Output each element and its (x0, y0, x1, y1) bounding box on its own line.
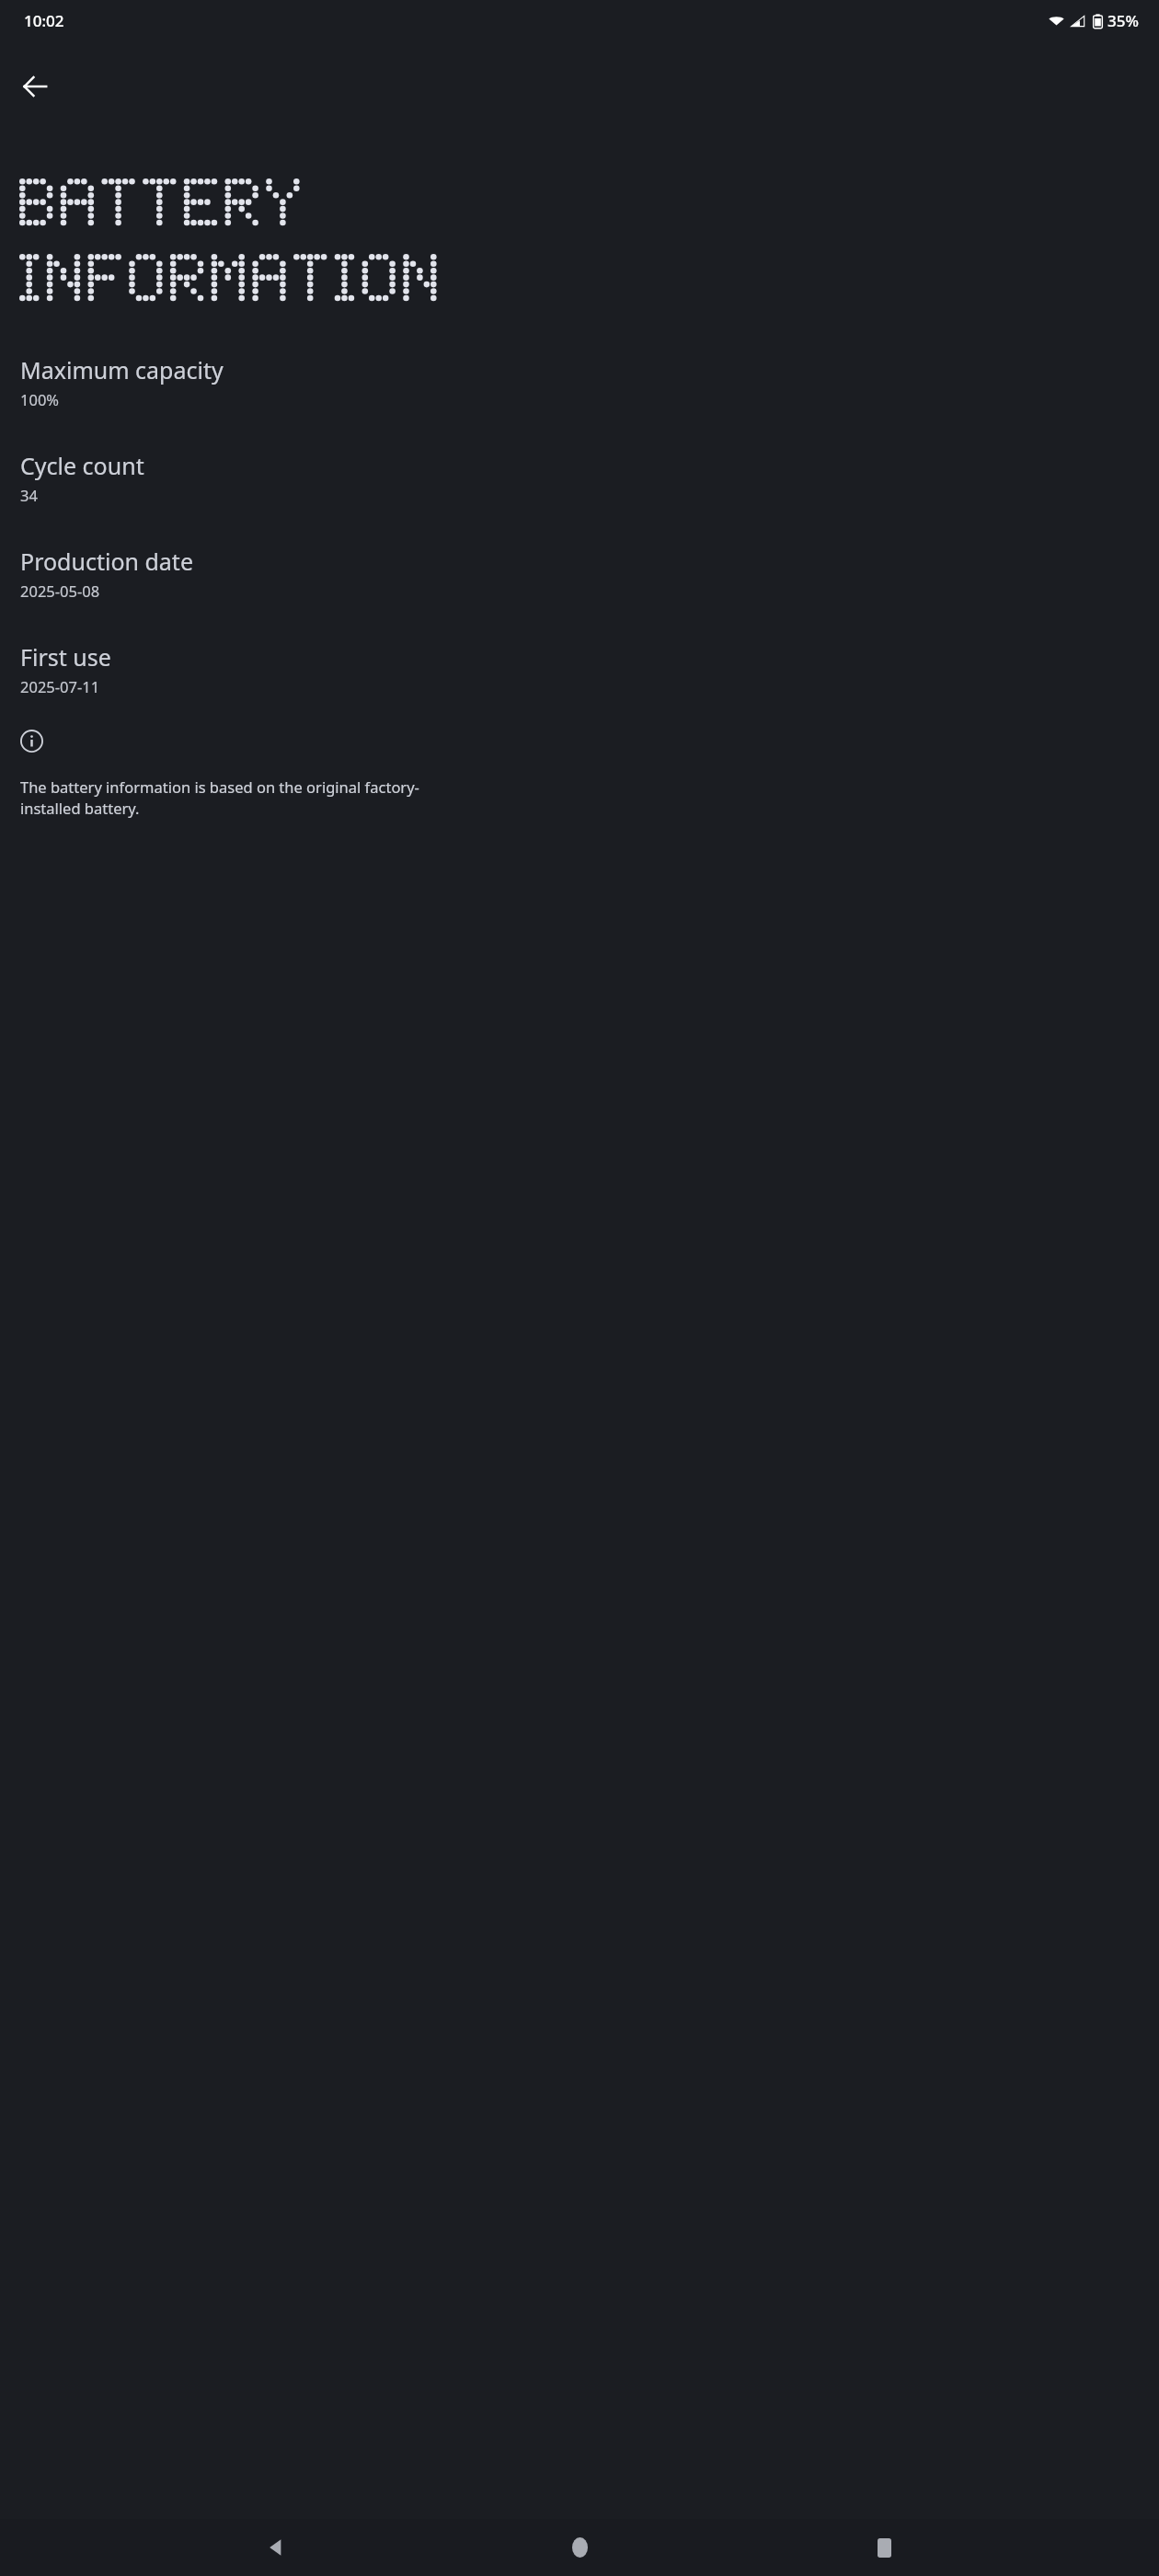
staticText: Production date (20, 546, 193, 577)
button[interactable]: Home (551, 2519, 608, 2576)
staticText: 2025-07-11 (20, 676, 100, 696)
staticText: 34 (20, 485, 38, 505)
staticText: The battery information is based on the … (20, 776, 425, 819)
staticText: 35% (1107, 10, 1139, 31)
staticText: First use (20, 641, 111, 673)
staticText: 2025-05-08 (20, 581, 100, 601)
button[interactable]: Recent apps (855, 2519, 912, 2576)
staticText: Cycle count (20, 450, 144, 481)
staticText: 10:02 (24, 10, 64, 31)
staticText: Maximum capacity (20, 354, 224, 385)
button[interactable]: Back (247, 2519, 304, 2576)
staticText: 100% (20, 389, 60, 409)
button[interactable]: Back (9, 61, 61, 112)
